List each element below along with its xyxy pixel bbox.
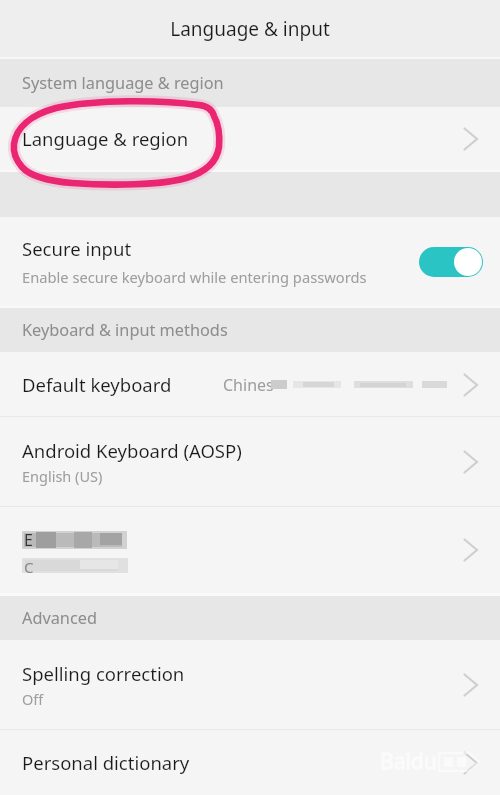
button[interactable]: Spelling correction	[0, 640, 500, 730]
staticText: Advanced	[22, 607, 97, 629]
staticText: Default keyboard	[22, 372, 172, 397]
staticText: Spelling correction	[22, 661, 185, 686]
button[interactable]: Default keyboard	[0, 352, 500, 417]
staticText: Android Keyboard (AOSP)	[22, 438, 242, 463]
staticText: Enable secure keyboard while entering pa…	[22, 267, 367, 287]
staticText: Personal dictionary	[22, 750, 190, 775]
staticText: English (US)	[22, 466, 103, 486]
staticText: Keyboard & input methods	[22, 319, 228, 341]
button[interactable]: Language & region	[0, 107, 500, 170]
button[interactable]: Android Keyboard (AOSP)	[0, 417, 500, 507]
staticText: C	[24, 557, 34, 577]
staticText: System language & region	[22, 72, 224, 94]
staticText: Chines	[223, 374, 274, 396]
button[interactable]: E	[0, 507, 500, 593]
button[interactable]: Personal dictionary	[0, 730, 500, 795]
staticText: E	[24, 529, 33, 551]
staticText: Off	[22, 689, 44, 709]
staticText: Language & input	[170, 16, 330, 42]
staticText: Secure input	[22, 236, 132, 261]
button[interactable]: Secure input	[0, 217, 500, 306]
staticText: Language & region	[22, 126, 189, 151]
button[interactable]: Secure input toggle	[419, 247, 483, 277]
